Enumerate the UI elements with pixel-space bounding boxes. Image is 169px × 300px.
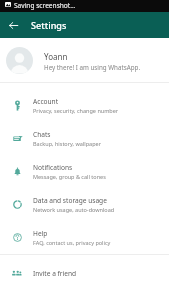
button[interactable]: Yoann — [0, 38, 169, 82]
staticText: FAQ, contact us, privacy policy — [33, 239, 111, 246]
button[interactable]: Data and storage usage — [0, 188, 169, 221]
staticText: Message, group & call tones — [33, 173, 106, 180]
staticText: Hey there! I am using WhatsApp. — [44, 63, 141, 72]
staticText: Help — [33, 229, 48, 238]
staticText: Invite a friend — [33, 269, 77, 278]
staticText: Saving screenshot… — [14, 1, 76, 10]
button[interactable]: Back — [0, 12, 26, 38]
staticText: Privacy, security, change number — [33, 107, 119, 114]
staticText: Chats — [33, 130, 51, 139]
staticText: Backup, history, wallpaper — [33, 140, 101, 147]
button[interactable]: Help — [0, 221, 169, 254]
staticText: Notifications — [33, 163, 73, 172]
button[interactable]: Chats — [0, 122, 169, 155]
button[interactable]: Invite a friend — [0, 257, 169, 290]
staticText: Network usage, auto-download — [33, 206, 115, 213]
button[interactable]: Notifications — [0, 155, 169, 188]
staticText: Settings — [31, 19, 67, 31]
staticText: Data and storage usage — [33, 196, 107, 205]
staticText: Yoann — [44, 51, 68, 62]
staticText: Account — [33, 97, 59, 106]
button[interactable]: Account — [0, 89, 169, 122]
